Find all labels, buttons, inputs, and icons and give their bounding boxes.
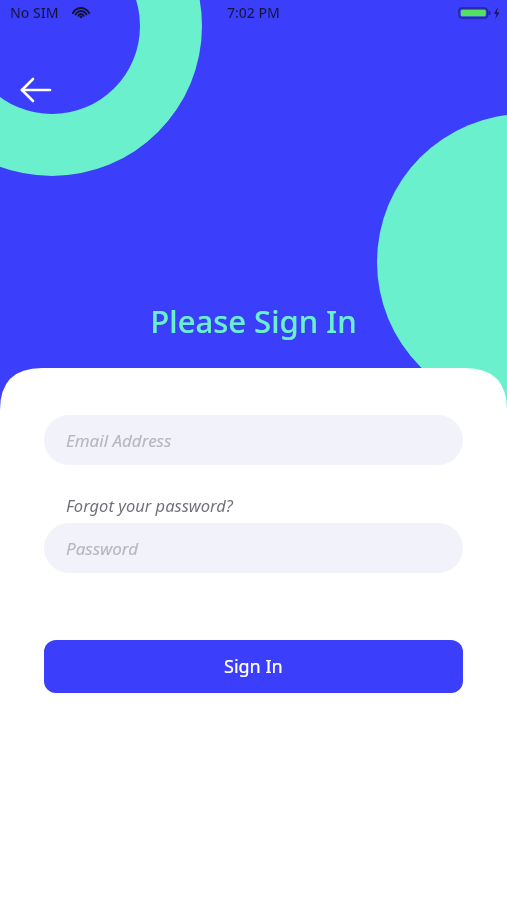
button[interactable]: Forgot your password? (60, 491, 239, 519)
staticText: Please Sign In (0, 300, 507, 342)
staticText: Sign In (224, 654, 283, 679)
button[interactable]: Email Address (44, 415, 463, 465)
staticText: 7:02 PM (227, 3, 280, 22)
staticText: Email Address (66, 429, 172, 452)
button[interactable]: Sign In (44, 640, 463, 693)
staticText: Password (66, 537, 139, 560)
button[interactable]: Back (8, 66, 56, 114)
staticText: Forgot your password? (66, 494, 233, 516)
button[interactable]: Password (44, 523, 463, 573)
staticText: No SIM (10, 3, 59, 22)
